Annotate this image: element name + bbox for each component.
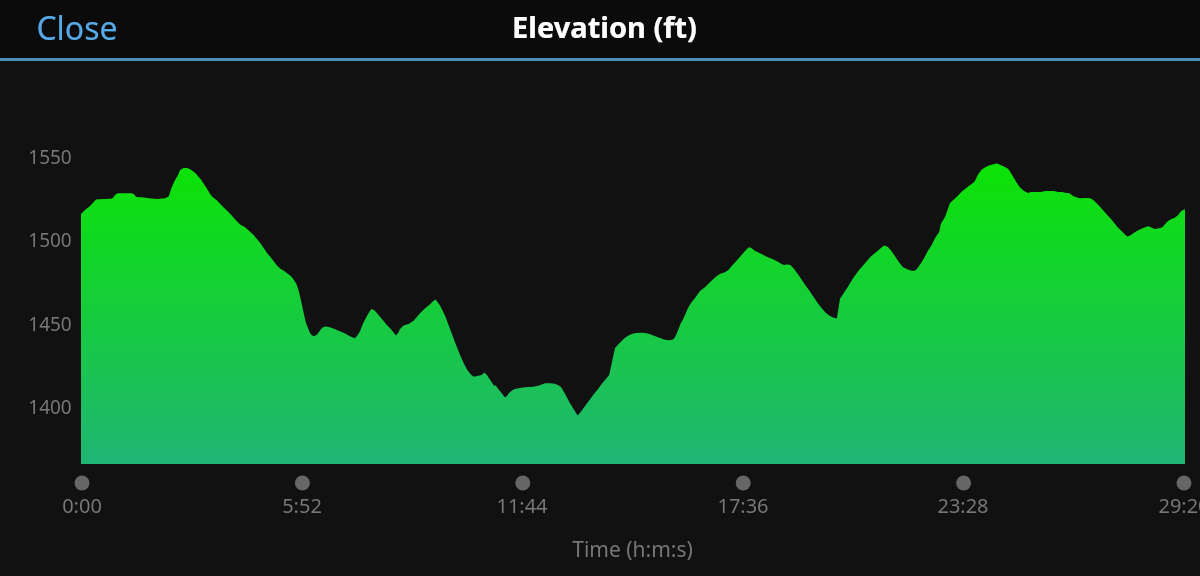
staticText: Close	[36, 6, 118, 50]
staticText: Time (h:m:s)	[572, 535, 693, 564]
staticText: 29:20	[1158, 492, 1200, 519]
button[interactable]: Close	[14, 0, 140, 62]
staticText: 1400	[28, 394, 72, 420]
staticText: 1500	[28, 227, 72, 253]
staticText: 17:36	[717, 492, 769, 519]
staticText: 1550	[28, 144, 72, 170]
staticText: 5:52	[282, 492, 322, 519]
staticText: 23:28	[937, 492, 989, 519]
staticText: 11:44	[496, 492, 548, 519]
staticText: 0:00	[62, 492, 102, 519]
staticText: 1450	[28, 311, 72, 337]
staticText: Elevation (ft)	[512, 7, 697, 46]
